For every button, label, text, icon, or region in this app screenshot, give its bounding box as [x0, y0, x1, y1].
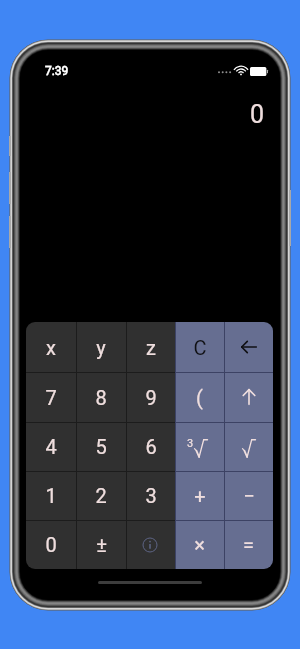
staticText: 4 [45, 435, 57, 458]
staticText: ± [96, 533, 107, 556]
button[interactable]: ( [175, 372, 224, 422]
staticText: 6 [145, 435, 157, 458]
button[interactable]: Move up [224, 372, 273, 422]
staticText: y [96, 336, 106, 359]
staticText: 8 [95, 386, 107, 409]
button[interactable]: 8 [76, 372, 126, 422]
button[interactable]: 9 [126, 372, 175, 422]
staticText: × [194, 533, 205, 556]
other: Backspace [239, 337, 259, 357]
staticText: C [193, 336, 207, 359]
staticText: 3 [187, 437, 194, 450]
button[interactable]: ± [76, 520, 126, 569]
staticText: 5 [95, 435, 107, 458]
staticText: ( [196, 386, 203, 409]
button[interactable]: + [175, 471, 224, 520]
button[interactable]: = [224, 520, 273, 569]
button[interactable]: 7 [26, 372, 76, 422]
staticText: 9 [145, 386, 157, 409]
staticText: 3 [145, 484, 157, 507]
staticText: 7 [45, 386, 57, 409]
other: Move up [239, 387, 259, 407]
button[interactable]: z [126, 322, 175, 372]
button[interactable]: 3 [126, 471, 175, 520]
button[interactable]: x [26, 322, 76, 372]
button[interactable]: C [175, 322, 224, 372]
button[interactable]: × [175, 520, 224, 569]
other: Cube root [188, 435, 214, 461]
staticText: 2 [95, 484, 107, 507]
other: Square root [236, 435, 262, 461]
staticText: x [46, 336, 56, 359]
button[interactable]: 5 [76, 422, 126, 471]
button[interactable]: 0 [26, 520, 76, 569]
button[interactable]: Cube root [175, 422, 224, 471]
staticText: = [243, 533, 254, 556]
staticText: 7:39 [45, 64, 69, 78]
staticText: 1 [45, 484, 57, 507]
button[interactable]: Backspace [224, 322, 273, 372]
button[interactable]: 4 [26, 422, 76, 471]
staticText: z [146, 336, 156, 359]
staticText: + [194, 484, 206, 507]
button[interactable]: Info [126, 520, 175, 569]
button[interactable]: 1 [26, 471, 76, 520]
other: Info [141, 536, 159, 554]
button[interactable]: 2 [76, 471, 126, 520]
button[interactable]: 6 [126, 422, 175, 471]
staticText: 0 [250, 100, 265, 129]
button[interactable]: Square root [224, 422, 273, 471]
button[interactable]: − [224, 471, 273, 520]
staticText: 0 [45, 533, 57, 556]
staticText: − [243, 484, 255, 507]
button[interactable]: y [76, 322, 126, 372]
